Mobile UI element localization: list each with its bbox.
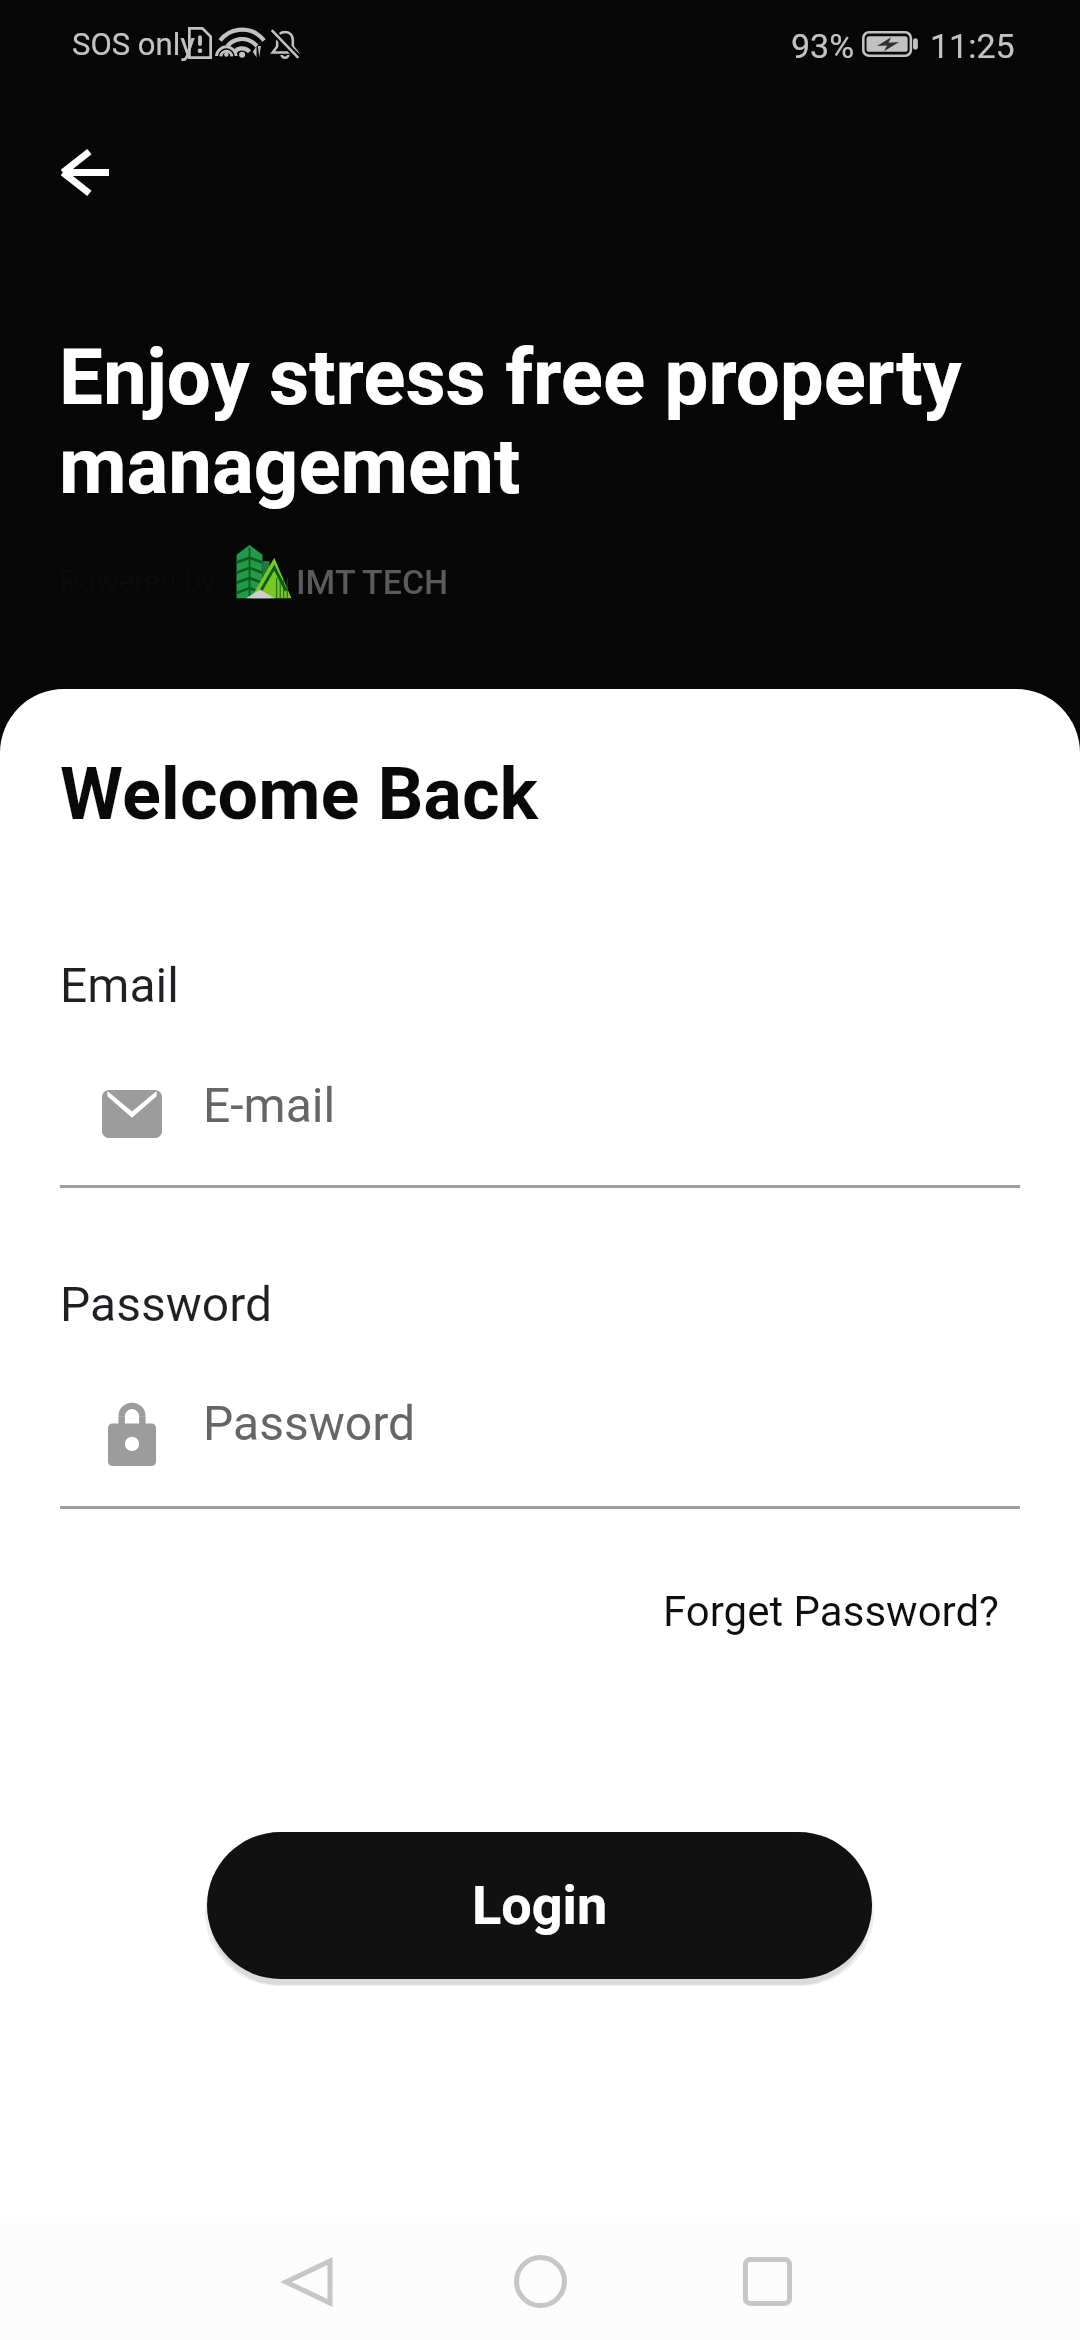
button[interactable]: Home [480, 2223, 600, 2340]
staticText: IMT TECH [296, 562, 449, 602]
staticText: Password [203, 1395, 416, 1451]
staticText: SOS only [72, 26, 195, 62]
button[interactable]: Forget Password? [639, 1567, 1023, 1656]
staticText: E-mail [203, 1077, 336, 1133]
button[interactable]: Login [207, 1832, 872, 1979]
button[interactable]: E-mail [0, 1063, 1080, 1185]
staticText: Email [60, 957, 179, 1013]
button[interactable]: Back [248, 2223, 368, 2340]
staticText: 93% [791, 26, 855, 66]
staticText: Login [472, 1874, 608, 1937]
staticText: Password [60, 1276, 273, 1332]
staticText: Forget Password? [663, 1587, 999, 1636]
button[interactable]: Back [45, 133, 123, 211]
staticText: Enjoy stress free property management [59, 332, 994, 512]
button[interactable]: Recents [707, 2223, 827, 2340]
staticText: Welcome Back [60, 752, 538, 836]
staticText: 11:25 [930, 26, 1015, 66]
button[interactable]: Password [0, 1379, 1080, 1501]
